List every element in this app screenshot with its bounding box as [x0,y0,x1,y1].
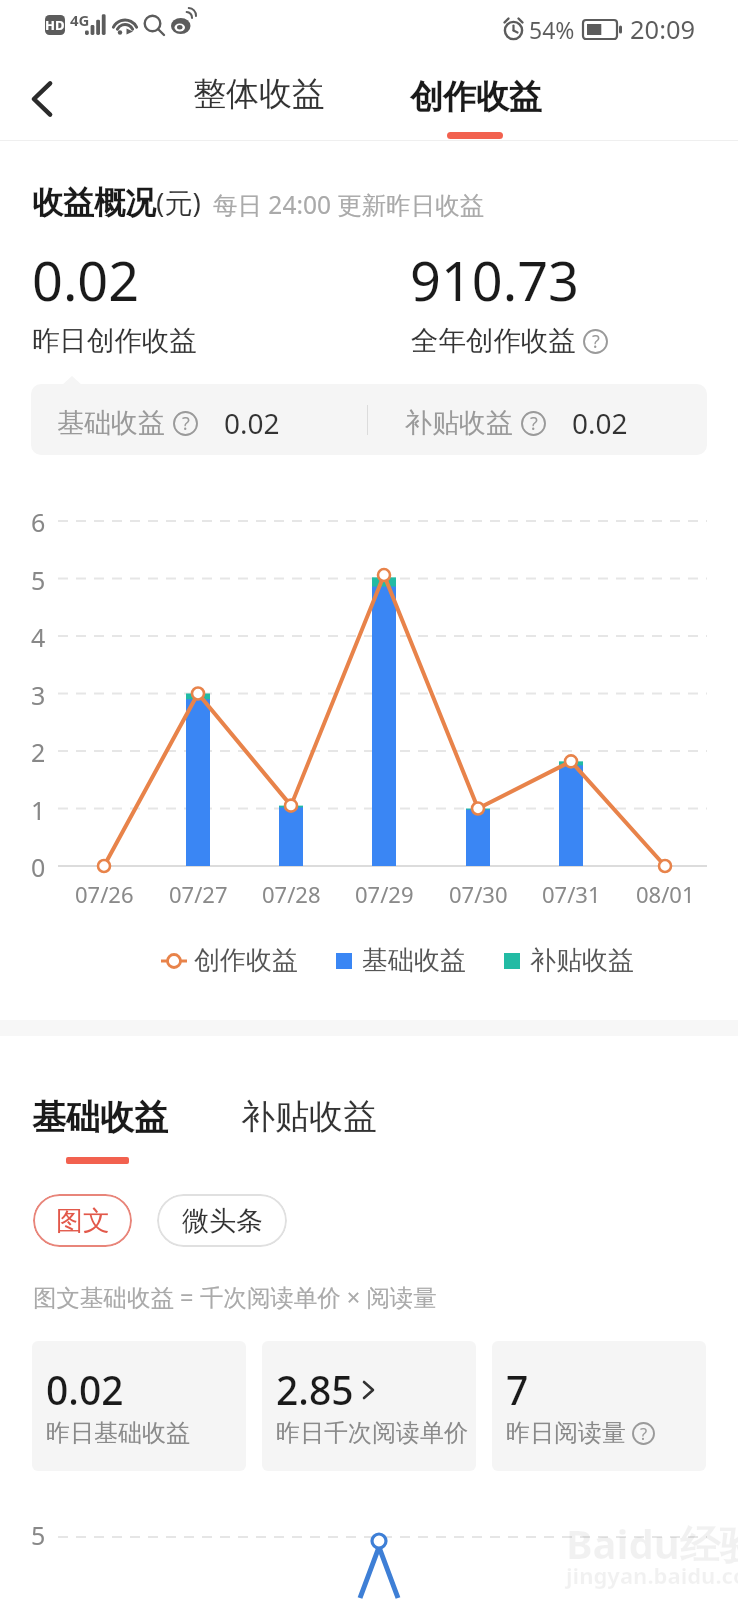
staticText: 图文基础收益 = 千次阅读单价 × 阅读量 [33,1281,437,1313]
staticText: 5 [31,1518,46,1552]
other: More info [173,411,198,436]
staticText: 全年创作收益 [411,324,576,359]
button[interactable]: 0.02 [32,1341,246,1471]
staticText: 0 [31,850,46,884]
other: More info [583,329,608,354]
staticText: Baidu经验 [566,1516,738,1571]
staticText: 2 [31,735,46,769]
staticText: 整体收益 [193,73,325,115]
staticText: (元) [156,183,201,221]
staticText: 6 [31,505,46,539]
staticText: 2.85 [276,1363,354,1416]
staticText: 5 [31,563,46,597]
staticText: 创作收益 [410,76,542,118]
button[interactable]: 2.85 [262,1341,476,1471]
staticText: 微头条 [182,1204,263,1238]
staticText: 补贴收益 [405,406,513,440]
staticText: ? [182,411,190,436]
staticText: 昨日创作收益 [32,324,197,359]
button[interactable]: 补贴收益 [229,1087,389,1145]
staticText: 基础收益 [362,944,466,977]
button[interactable]: 创作收益 [386,58,566,140]
staticText: 0.02 [32,243,140,317]
staticText: 昨日阅读量 [506,1418,626,1448]
button[interactable]: Back [12,69,72,129]
staticText: 3 [31,678,46,712]
staticText: 07/31 [542,879,601,909]
staticText: 收益概况 [32,183,156,222]
staticText: 20:09 [630,12,696,47]
staticText: 图文 [56,1204,110,1238]
staticText: 昨日千次阅读单价 [276,1418,468,1448]
staticText: 7 [506,1363,529,1416]
button[interactable]: 图文 [33,1194,132,1247]
staticText: 54% [529,14,575,45]
button[interactable]: 整体收益 [169,58,349,140]
staticText: 07/26 [75,879,134,909]
staticText: 每日 24:00 更新昨日收益 [213,188,485,221]
staticText: 910.73 [410,243,579,317]
staticText: 基础收益 [32,1096,168,1139]
staticText: HD [45,16,65,34]
staticText: 基础收益 [57,406,165,440]
button[interactable]: 7 [492,1341,706,1471]
staticText: 创作收益 [194,944,298,977]
other: More info [521,411,546,436]
staticText: 07/29 [355,879,414,909]
staticText: 4G [70,10,90,30]
staticText: 0.02 [46,1363,124,1416]
staticText: 补贴收益 [530,944,634,977]
staticText: 0.02 [224,404,280,442]
staticText: 4 [31,620,46,654]
staticText: ? [592,329,600,354]
other: More info [632,1422,655,1445]
staticText: 昨日基础收益 [46,1418,190,1448]
staticText: jingyan.baidu.com [566,1560,738,1590]
staticText: 07/30 [449,879,508,909]
staticText: ? [640,1422,648,1445]
staticText: 补贴收益 [241,1095,377,1138]
button[interactable]: 微头条 [157,1194,287,1247]
staticText: 0.02 [572,404,628,442]
staticText: ? [530,411,538,436]
staticText: 07/27 [169,879,228,909]
staticText: 07/28 [262,879,321,909]
button[interactable]: 基础收益 [20,1088,180,1146]
staticText: 08/01 [636,879,695,909]
button[interactable]: 基础收益 [31,384,707,455]
staticText: 1 [31,793,46,827]
